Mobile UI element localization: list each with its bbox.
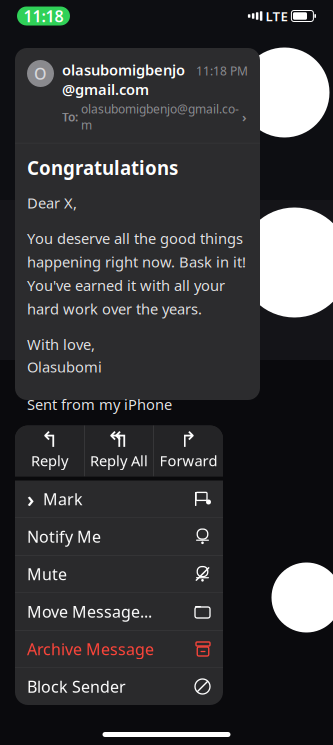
staticText: LTE	[265, 7, 287, 25]
staticText: ↱	[179, 427, 197, 451]
staticText: 11:18	[23, 5, 63, 27]
staticText: olasubomigbenjo@gmail.com	[81, 101, 239, 133]
staticText: Notify Me	[27, 526, 101, 547]
staticText: Move Message...	[27, 601, 152, 622]
button[interactable]: Notify Me	[15, 518, 223, 555]
button[interactable]: Mute	[15, 555, 223, 592]
staticText: Olasubomi	[27, 357, 102, 376]
button[interactable]: ↰	[84, 425, 153, 476]
staticText: ↰	[106, 427, 124, 451]
staticText: Sent from my iPhone	[27, 394, 172, 414]
staticText: O	[34, 63, 47, 84]
staticText: Mute	[27, 563, 67, 585]
staticText: ›	[27, 485, 34, 513]
staticText: Forward	[159, 451, 217, 470]
button[interactable]: ›	[15, 480, 223, 517]
staticText: To:	[62, 109, 78, 125]
staticText: Reply	[31, 451, 68, 470]
staticText: Block Sender	[27, 676, 126, 697]
staticText: You deserve all the good things happenin…	[27, 229, 246, 318]
button[interactable]: To:	[62, 101, 247, 133]
button[interactable]: Archive Message	[15, 630, 223, 667]
staticText: ›	[242, 108, 247, 126]
staticText: Dear X,	[27, 193, 77, 213]
staticText: olasubomigbenjo@gmail.com	[62, 60, 185, 99]
staticText: Archive Message	[27, 638, 154, 660]
button[interactable]: Block Sender	[15, 668, 223, 705]
staticText: ↰	[40, 427, 58, 451]
staticText: ↰	[111, 427, 129, 451]
button[interactable]: Move Message...	[15, 593, 223, 630]
staticText: Reply All	[90, 451, 148, 470]
staticText: 11:18 PM	[196, 63, 248, 79]
staticText: Mark	[43, 488, 83, 510]
button[interactable]: ↱	[154, 425, 223, 476]
button[interactable]: ↰	[15, 425, 84, 476]
staticText: Congratulations	[27, 155, 178, 180]
staticText: With love,	[27, 334, 95, 354]
